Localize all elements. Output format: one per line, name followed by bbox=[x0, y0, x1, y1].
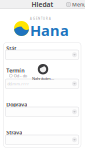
button[interactable]: Menu bbox=[64, 0, 85, 9]
staticText: Stát bbox=[6, 45, 16, 52]
button[interactable] bbox=[5, 135, 79, 144]
button[interactable]: dd.mm.rrrr bbox=[5, 79, 79, 88]
staticText: Od – do bbox=[14, 73, 27, 78]
button[interactable]: Od – do bbox=[9, 73, 27, 78]
staticText: Nahrávám… bbox=[32, 76, 54, 81]
staticText: Hana bbox=[30, 20, 69, 40]
staticText: Termín bbox=[6, 67, 24, 74]
button[interactable] bbox=[5, 50, 79, 59]
staticText: Doprava bbox=[6, 101, 27, 108]
button[interactable] bbox=[5, 107, 79, 116]
staticText: Strava bbox=[6, 129, 22, 136]
staticText: Menu bbox=[72, 1, 85, 8]
staticText: A G E N T U R A bbox=[30, 17, 51, 20]
staticText: dd.mm.rrrr bbox=[7, 81, 29, 86]
staticText: Hledat bbox=[31, 0, 53, 9]
